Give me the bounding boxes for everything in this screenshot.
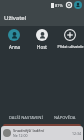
staticText: Snadnější ladění: [13, 128, 45, 133]
staticText: 81%: [55, 3, 63, 8]
button[interactable]: Host: [28, 28, 56, 51]
staticText: Host: [37, 44, 47, 50]
button[interactable]: Snadnější ladění: [1, 126, 83, 140]
button[interactable]: Add user: [56, 28, 84, 50]
staticText: Ne 12:00: [13, 133, 28, 138]
staticText: Přidat uživatele: [57, 44, 84, 49]
button[interactable]: Anna: [0, 28, 28, 51]
staticText: NÁPOVĚDA: [54, 115, 76, 120]
staticText: Anna: [9, 44, 20, 50]
staticText: 12:34: [72, 131, 81, 136]
button[interactable]: NÁPOVĚDA: [51, 113, 79, 122]
staticText: DALŠÍ NASTAVENÍ: [9, 115, 43, 120]
button[interactable]: Settings: [65, 1, 73, 9]
other: Add user: [64, 29, 76, 41]
button[interactable]: Account: [74, 1, 82, 9]
staticText: Uživatel: [4, 14, 27, 22]
button[interactable]: DALŠÍ NASTAVENÍ: [6, 113, 46, 122]
